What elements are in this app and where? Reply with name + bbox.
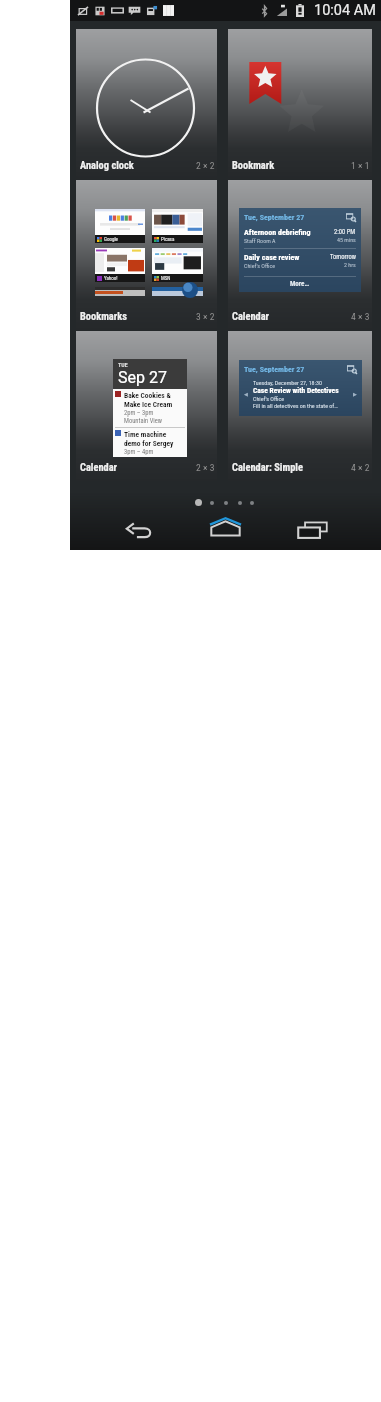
staticText: 2pm – 3pm: [124, 409, 154, 417]
button[interactable]: Recent apps: [293, 514, 331, 546]
staticText: Calendar: [232, 310, 351, 322]
button[interactable]: Bookmark: [228, 29, 372, 179]
button[interactable]: Tue, September 27: [228, 331, 372, 481]
staticText: Time machine: [124, 430, 167, 439]
staticText: 2:00 PM: [334, 228, 356, 236]
staticText: Analog clock: [80, 159, 196, 171]
staticText: 4 × 2: [351, 462, 370, 473]
button[interactable]: TUE: [76, 331, 217, 481]
staticText: Tomorrow: [330, 253, 356, 261]
staticText: Case Review with Detectives: [253, 386, 339, 395]
staticText: More…: [290, 280, 310, 288]
staticText: 45 mins: [337, 236, 356, 243]
staticText: Afternoon debriefing: [244, 228, 311, 237]
staticText: MSN: [161, 275, 171, 281]
staticText: Sep 27: [118, 368, 167, 387]
staticText: Yahoo!: [104, 275, 118, 281]
staticText: 3pm – 4pm: [124, 448, 154, 455]
staticText: 3 × 2: [196, 311, 215, 322]
button[interactable]: Home: [206, 511, 244, 543]
staticText: Calendar: [80, 461, 196, 473]
staticText: Make Ice Cream: [124, 400, 173, 409]
button[interactable]: Analog clock: [76, 29, 217, 179]
staticText: TUE: [118, 361, 128, 368]
staticText: 10:04 AM: [314, 2, 376, 19]
staticText: 2 hrs: [344, 261, 356, 268]
staticText: Chief's Office: [244, 262, 276, 269]
button[interactable]: Tue, September 27: [228, 180, 372, 330]
staticText: 2 × 3: [196, 462, 215, 473]
staticText: ▶: [353, 391, 357, 397]
staticText: Chief's Office: [253, 395, 285, 402]
staticText: Tue, September 27: [244, 213, 346, 222]
staticText: ◀: [244, 391, 248, 397]
staticText: Tue, September 27: [244, 365, 347, 374]
staticText: Fill in all detectives on the state of…: [253, 402, 338, 409]
staticText: 4 × 3: [351, 311, 370, 322]
staticText: demo for Sergey: [124, 439, 174, 448]
staticText: Bookmarks: [80, 310, 196, 322]
staticText: Picasa: [161, 236, 175, 242]
staticText: Staff Room A: [244, 237, 276, 244]
staticText: Tuesday, December 27, 18:30: [253, 379, 322, 386]
staticText: Bookmark: [232, 159, 351, 171]
staticText: Calendar: Simple: [232, 461, 351, 473]
staticText: 2 × 2: [196, 160, 215, 171]
staticText: Mountain View: [124, 417, 163, 425]
staticText: Bake Cookies &: [124, 391, 171, 400]
staticText: 1 × 1: [351, 160, 370, 171]
button[interactable]: Back: [120, 514, 158, 546]
button[interactable]: Google: [76, 180, 217, 330]
staticText: Daily case review: [244, 253, 300, 262]
staticText: Google: [104, 236, 118, 242]
